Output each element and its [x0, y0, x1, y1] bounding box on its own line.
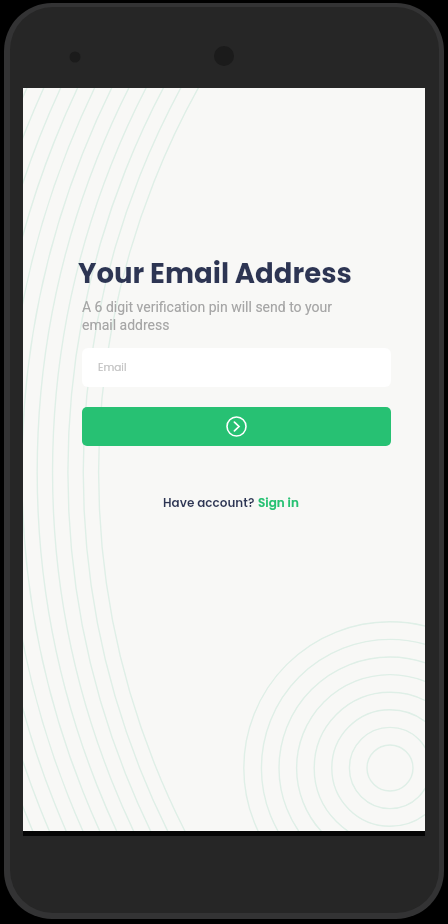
staticText: A 6 digit verification pin will send to … [82, 299, 344, 333]
staticText: Your Email Address [78, 254, 352, 292]
staticText: Sign in [258, 494, 299, 511]
button[interactable]: Continue [82, 407, 391, 446]
staticText: Email [98, 360, 127, 375]
staticText: Have account? [163, 494, 258, 511]
button[interactable]: Email [82, 348, 391, 387]
button[interactable]: Have account? [163, 492, 299, 513]
